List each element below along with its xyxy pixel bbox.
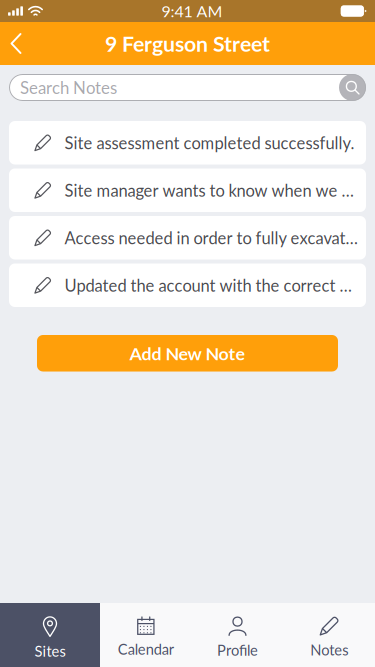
button[interactable]: Site assessment completed successfully. <box>9 121 366 164</box>
button[interactable]: Notes <box>283 603 375 667</box>
staticText: 9:41 AM <box>161 1 222 21</box>
staticText: Profile <box>217 641 258 659</box>
staticText: Site assessment completed successfully. <box>65 133 355 153</box>
button[interactable]: Profile <box>192 603 283 667</box>
staticText: Access needed in order to fully excavate… <box>65 228 358 248</box>
staticText: Site manager wants to know when we will … <box>65 180 358 200</box>
button[interactable]: Search <box>339 74 366 101</box>
button[interactable]: Sites <box>0 603 100 667</box>
staticText: Sites <box>34 642 65 660</box>
button[interactable]: Calendar <box>100 603 192 667</box>
button[interactable]: Updated the account with the correct pap… <box>9 263 366 307</box>
staticText: Updated the account with the correct pap… <box>65 275 358 295</box>
staticText: 9 Ferguson Street <box>105 31 270 56</box>
button[interactable]: Back <box>0 22 32 65</box>
button[interactable]: Add New Note <box>37 335 338 371</box>
button[interactable]: Access needed in order to fully excavate… <box>9 216 366 259</box>
staticText: Add New Note <box>129 342 245 364</box>
staticText: Notes <box>310 641 348 659</box>
button[interactable]: Site manager wants to know when we will … <box>9 168 366 212</box>
staticText: Calendar <box>118 640 174 658</box>
staticText: Search Notes <box>20 77 117 98</box>
